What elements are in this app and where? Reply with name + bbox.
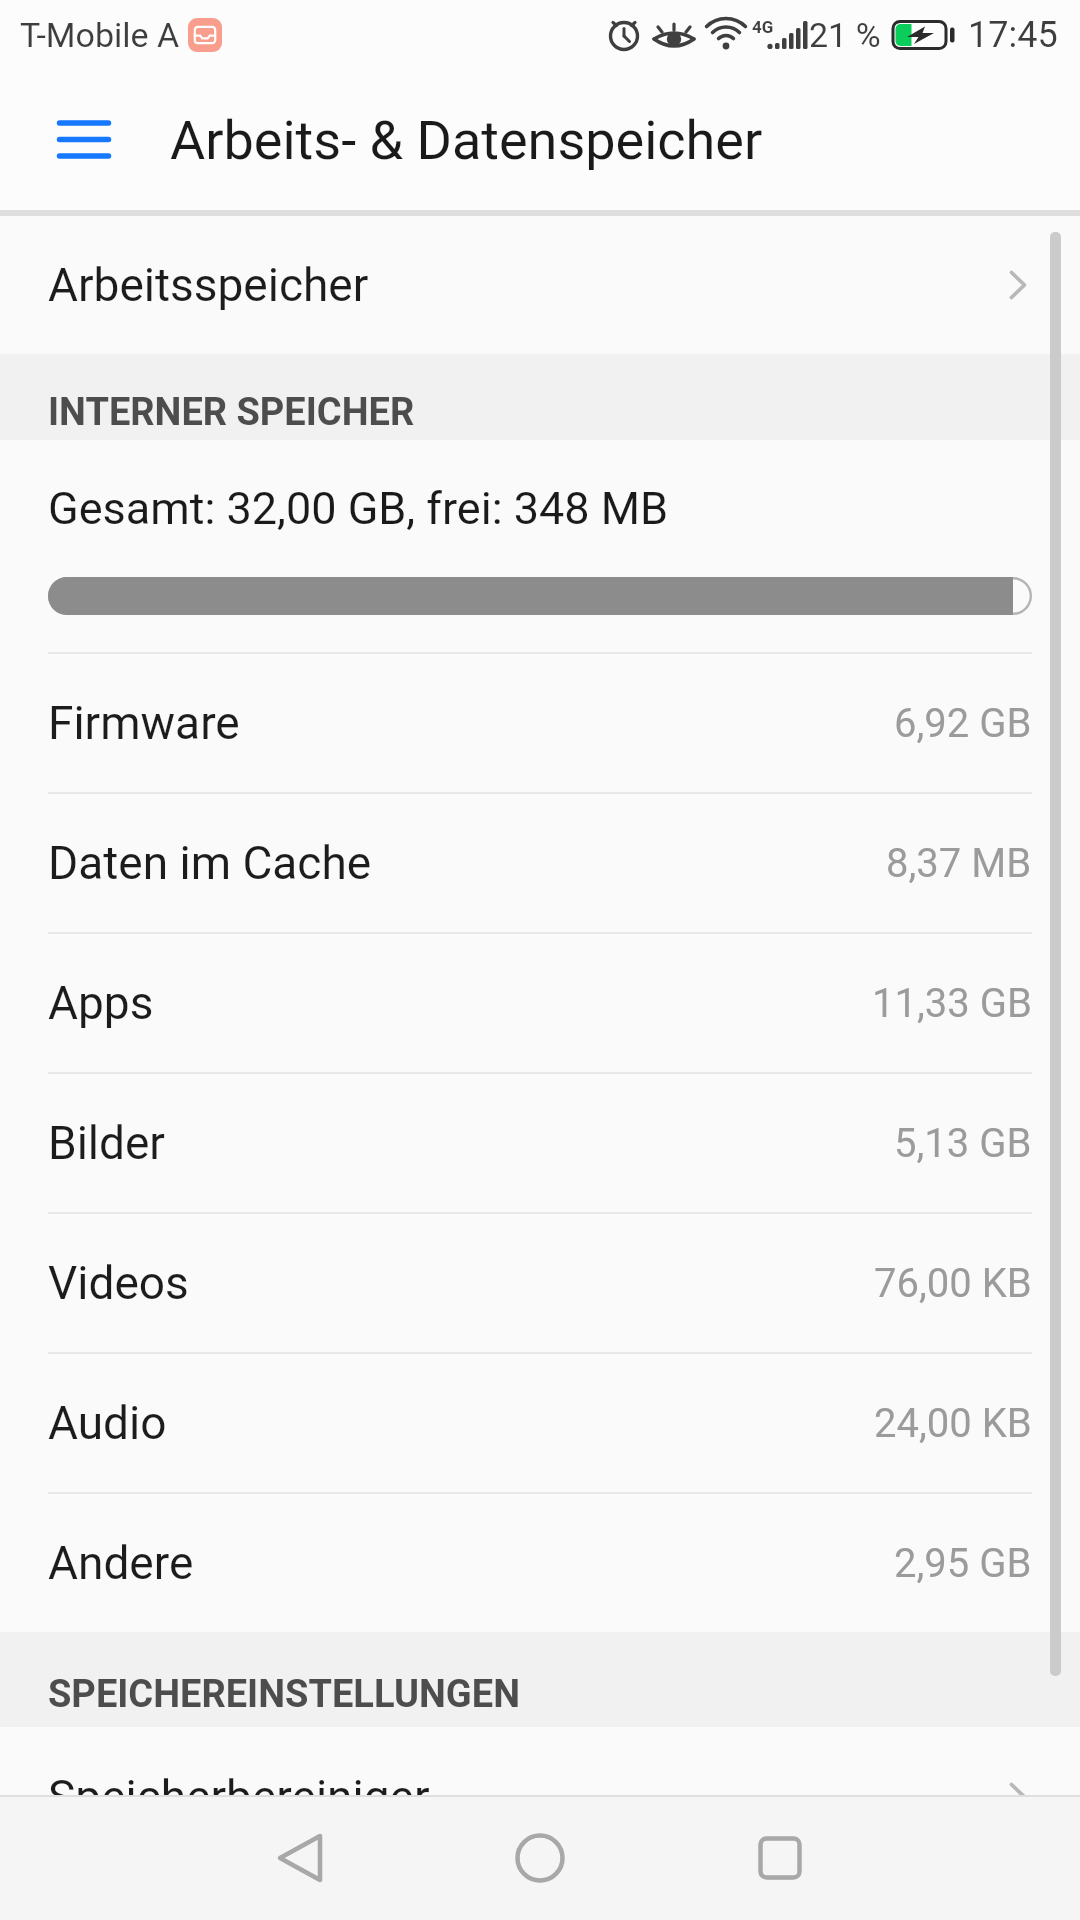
button[interactable]: Audio — [48, 1354, 1032, 1492]
button[interactable]: Bilder — [48, 1074, 1032, 1212]
staticText: Firmware — [48, 696, 240, 750]
staticText: 5,13 GB — [894, 1120, 1032, 1167]
staticText: Andere — [48, 1536, 194, 1590]
staticText: 8,37 MB — [886, 840, 1032, 887]
staticText: Speicherbereiniger — [48, 1770, 430, 1795]
staticText: 24,00 KB — [874, 1400, 1032, 1447]
staticText: Daten im Cache — [48, 836, 372, 890]
button[interactable]: Andere — [48, 1494, 1032, 1632]
staticText: 6,92 GB — [894, 700, 1032, 747]
staticText: T-Mobile A — [20, 15, 180, 55]
button[interactable]: Arbeitsspeicher — [48, 216, 1026, 354]
staticText: 76,00 KB — [874, 1260, 1032, 1307]
staticText: SPEICHEREINSTELLUNGEN — [48, 1672, 520, 1717]
staticText: 11,33 GB — [872, 980, 1032, 1027]
staticText: Audio — [48, 1396, 167, 1450]
staticText: Videos — [48, 1256, 189, 1310]
staticText: INTERNER SPEICHER — [48, 390, 415, 435]
button[interactable] — [57, 120, 111, 160]
staticText: 17:45 — [968, 14, 1058, 56]
button[interactable]: Videos — [48, 1214, 1032, 1352]
button[interactable] — [240, 1795, 360, 1920]
button[interactable]: Apps — [48, 934, 1032, 1072]
staticText: 2,95 GB — [894, 1540, 1032, 1587]
staticText: 4G — [752, 17, 774, 37]
button[interactable]: Daten im Cache — [48, 794, 1032, 932]
button[interactable]: Firmware — [48, 654, 1032, 792]
staticText: Apps — [48, 976, 154, 1030]
staticText: Bilder — [48, 1116, 165, 1170]
button[interactable]: Speicherbereiniger — [48, 1728, 1026, 1795]
staticText: Arbeits- & Datenspeicher — [170, 109, 763, 172]
staticText: 21 % — [809, 15, 881, 55]
staticText: Arbeitsspeicher — [48, 258, 369, 312]
button[interactable] — [720, 1795, 840, 1920]
button[interactable] — [480, 1795, 600, 1920]
staticText: Gesamt: 32,00 GB, frei: 348 MB — [48, 482, 669, 535]
